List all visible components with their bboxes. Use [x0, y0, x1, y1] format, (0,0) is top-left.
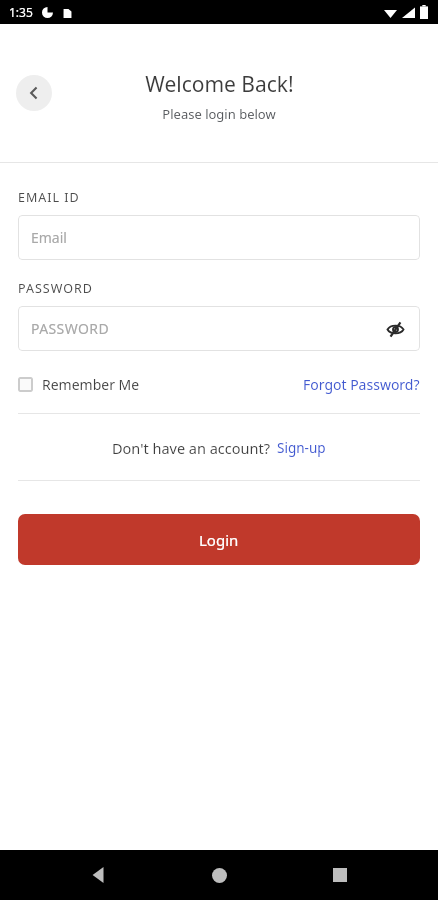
- button[interactable]: Remember Me: [18, 375, 140, 394]
- button[interactable]: PASSWORD: [18, 306, 420, 351]
- staticText: Login: [199, 530, 239, 550]
- button[interactable]: Login: [18, 514, 420, 565]
- button[interactable]: Back: [77, 853, 121, 897]
- button[interactable]: Sign-up: [277, 439, 326, 457]
- staticText: Forgot Password?: [303, 375, 420, 394]
- button[interactable]: Email: [18, 215, 420, 260]
- button[interactable]: Recent apps: [318, 853, 362, 897]
- staticText: Please login below: [162, 105, 276, 123]
- staticText: Don't have an account?: [112, 438, 270, 458]
- staticText: Remember Me: [42, 375, 140, 394]
- staticText: PASSWORD: [31, 319, 110, 338]
- button[interactable]: Home: [197, 853, 241, 897]
- staticText: EMAIL ID: [18, 189, 80, 206]
- staticText: PASSWORD: [18, 280, 93, 297]
- staticText: 1:35: [9, 4, 33, 20]
- button[interactable]: Toggle password visibility: [383, 317, 407, 341]
- button[interactable]: Forgot Password?: [303, 375, 420, 394]
- staticText: Email: [31, 228, 67, 247]
- staticText: Sign-up: [277, 439, 326, 457]
- staticText: Welcome Back!: [145, 70, 294, 99]
- button[interactable]: Back: [16, 75, 52, 111]
